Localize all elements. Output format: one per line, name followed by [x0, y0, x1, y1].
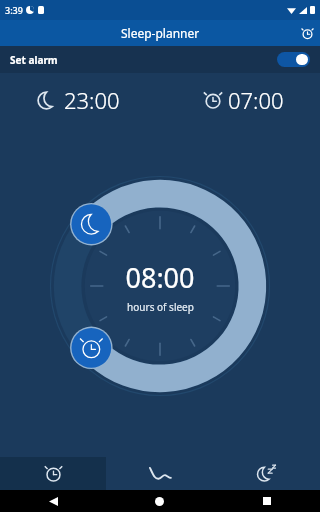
staticText: 08:00	[125, 259, 195, 296]
staticText: 07:00	[228, 85, 284, 115]
button[interactable]: Recents	[213, 490, 320, 512]
button[interactable]: Set alarm	[0, 46, 320, 73]
button[interactable]: Alarm	[0, 457, 106, 490]
button[interactable]: Sleep mode	[213, 457, 320, 490]
staticText: 3:39	[5, 4, 23, 16]
staticText: Set alarm	[10, 53, 58, 67]
button[interactable]: Sleep graph	[106, 457, 213, 490]
staticText: Sleep-planner	[121, 25, 200, 41]
button[interactable]: 23:00	[36, 85, 120, 115]
button[interactable]: 07:00	[203, 85, 284, 115]
staticText: 23:00	[64, 85, 120, 115]
staticText: hours of sleep	[127, 300, 194, 314]
button[interactable]: Home	[106, 490, 213, 512]
button[interactable]: Back	[0, 490, 106, 512]
button[interactable]: 08:00	[125, 259, 195, 314]
button[interactable]: Alarms	[294, 20, 320, 46]
